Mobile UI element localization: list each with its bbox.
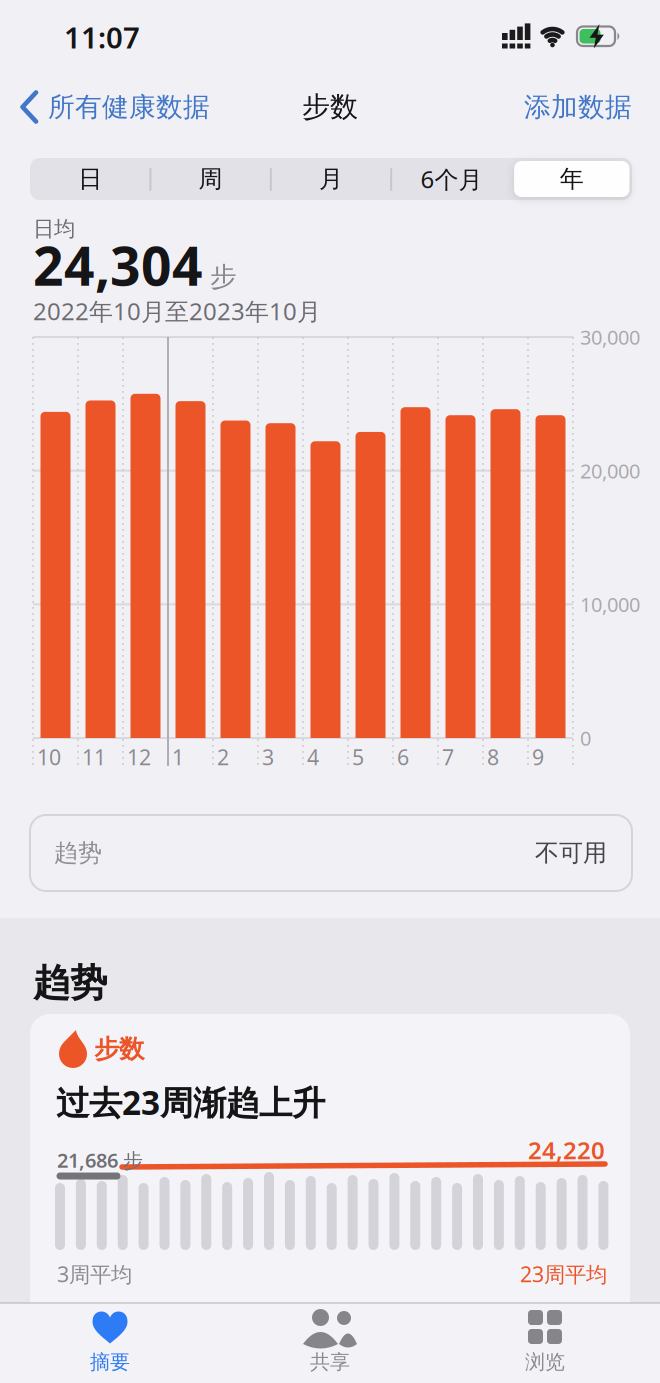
- staticText: 7: [442, 743, 454, 771]
- staticText: 步数: [302, 90, 358, 124]
- staticText: 趋势: [33, 960, 107, 1006]
- staticText: 11:07: [64, 17, 140, 56]
- staticText: 周: [199, 164, 223, 194]
- button[interactable]: 添加数据: [484, 79, 632, 135]
- staticText: 9: [532, 743, 544, 771]
- staticText: 3周平均: [57, 1260, 132, 1288]
- staticText: 30,000: [580, 324, 640, 350]
- staticText: 24,220: [528, 1134, 605, 1166]
- button[interactable]: 周: [150, 158, 271, 200]
- staticText: 1: [172, 743, 184, 771]
- staticText: 10,000: [580, 591, 640, 618]
- staticText: 趋势: [54, 838, 102, 868]
- button[interactable]: 6个月: [391, 158, 512, 200]
- button[interactable]: 所有健康数据: [16, 79, 266, 135]
- staticText: 添加数据: [524, 91, 632, 123]
- staticText: 12: [127, 743, 151, 771]
- staticText: 所有健康数据: [48, 91, 210, 123]
- staticText: 8: [487, 743, 499, 771]
- button[interactable]: 共享: [240, 1303, 420, 1383]
- staticText: 2: [217, 743, 229, 771]
- staticText: 23周平均: [520, 1260, 607, 1288]
- staticText: 摘要: [90, 1350, 130, 1374]
- button[interactable]: 摘要: [20, 1303, 200, 1383]
- staticText: 日: [78, 164, 102, 194]
- staticText: 0: [580, 725, 591, 751]
- staticText: 月: [319, 164, 343, 194]
- button[interactable]: 日: [30, 158, 150, 200]
- staticText: 共享: [310, 1350, 350, 1374]
- button[interactable]: 年: [512, 158, 632, 200]
- staticText: 21,686 步: [57, 1147, 143, 1173]
- staticText: 10: [37, 743, 61, 771]
- staticText: 步数: [94, 1033, 144, 1064]
- button[interactable]: 趋势: [30, 815, 632, 891]
- staticText: 6个月: [420, 163, 482, 195]
- staticText: 24,304: [33, 230, 203, 300]
- button[interactable]: 浏览: [455, 1303, 635, 1383]
- staticText: 步: [210, 260, 237, 293]
- staticText: 20,000: [580, 457, 640, 484]
- staticText: 4: [307, 743, 319, 771]
- staticText: 年: [560, 164, 584, 194]
- staticText: 3: [262, 743, 274, 771]
- staticText: 5: [352, 743, 364, 771]
- staticText: 6: [397, 743, 409, 771]
- button[interactable]: 月: [271, 158, 391, 200]
- button[interactable]: 步数: [0, 0, 660, 1383]
- staticText: 日均: [33, 216, 75, 242]
- staticText: 浏览: [525, 1350, 565, 1374]
- staticText: 11: [82, 743, 106, 771]
- staticText: 不可用: [535, 838, 607, 868]
- staticText: 2022年10月至2023年10月: [33, 295, 321, 327]
- staticText: 过去23周渐趋上升: [56, 1080, 325, 1124]
